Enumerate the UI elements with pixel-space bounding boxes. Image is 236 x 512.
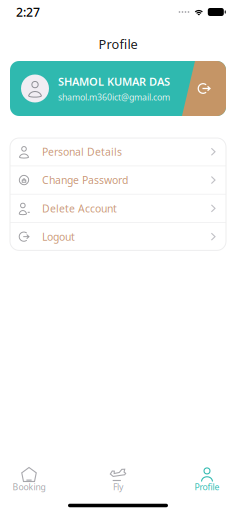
button[interactable]: Profile [179,466,235,498]
staticText: Profile [98,35,137,53]
staticText: Profile [194,481,219,493]
button[interactable]: Personal Details [10,138,226,165]
staticText: 2:27 [16,4,40,20]
button[interactable]: Delete Account [10,195,226,222]
staticText: SHAMOL KUMAR DAS [58,74,170,89]
staticText: Delete Account [42,201,117,215]
staticText: shamol.m360ict@gmail.com [58,91,170,103]
staticText: Change Password [42,173,128,187]
staticText: Booking [12,481,45,493]
button[interactable]: Booking [1,466,57,498]
button[interactable]: Fly [90,466,146,498]
staticText: Fly [113,481,123,493]
staticText: Personal Details [42,145,122,159]
staticText: Logout [42,230,75,244]
button[interactable]: Logout [10,223,226,250]
button[interactable]: Change Password [10,166,226,194]
button[interactable]: Log out [182,61,226,116]
